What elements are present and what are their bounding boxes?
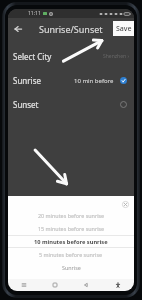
staticText: 10 min before (74, 77, 114, 85)
button[interactable]: Sunrise (8, 261, 134, 274)
staticText: 5 minutes before sunrise (39, 251, 103, 258)
staticText: Shenzhen › (103, 53, 129, 60)
staticText: 20 minutes before sunrise (38, 212, 105, 219)
button[interactable]: Home (39, 279, 70, 291)
button[interactable]: 10 minutes before sunrise (8, 235, 134, 248)
staticText: Sunrise (62, 264, 81, 271)
button[interactable]: 5 minutes before sunrise (8, 248, 134, 261)
button[interactable]: Close (120, 199, 130, 209)
button[interactable]: 15 minutes before sunrise (8, 222, 134, 235)
button[interactable]: Save (113, 21, 134, 36)
button[interactable]: Selected (118, 75, 129, 86)
staticText: Sunrise (13, 75, 41, 86)
button[interactable]: Accessibility (102, 279, 134, 291)
staticText: Sunrise/Sunset (39, 23, 103, 35)
button[interactable]: Recents (8, 279, 39, 291)
button[interactable]: Sunrise (8, 68, 134, 92)
staticText: 15 minutes before sunrise (38, 225, 105, 232)
staticText: Select City (13, 51, 52, 62)
staticText: Save (116, 24, 132, 34)
staticText: Sunset (13, 99, 39, 110)
staticText: 10 minutes before sunrise (34, 238, 108, 246)
button[interactable]: Back (70, 279, 102, 291)
button[interactable]: Sunset (8, 92, 134, 116)
button[interactable]: Back (11, 22, 24, 35)
staticText: 11:11 (28, 10, 41, 17)
button[interactable]: Select City (8, 44, 134, 68)
button[interactable]: Not selected (118, 99, 129, 110)
button[interactable]: 20 minutes before sunrise (8, 209, 134, 222)
